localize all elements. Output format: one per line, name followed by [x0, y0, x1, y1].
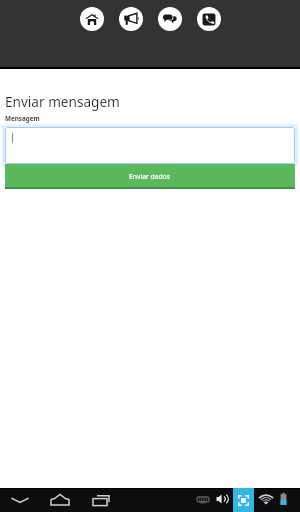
- button[interactable]: Messages: [158, 7, 182, 31]
- staticText: Enviar dados: [129, 172, 171, 181]
- button[interactable]: Announcements: [119, 7, 143, 31]
- button[interactable]: Back: [8, 490, 32, 510]
- button[interactable]: Call: [197, 7, 221, 31]
- button[interactable]: Recent apps: [88, 490, 112, 510]
- button[interactable]: Home: [48, 490, 72, 510]
- staticText: Enviar mensagem: [5, 92, 120, 111]
- button[interactable]: Screenshot: [233, 488, 254, 512]
- button[interactable]: Home: [80, 7, 104, 31]
- button[interactable]: Enviar dados: [5, 164, 295, 189]
- staticText: Mensagem: [5, 114, 40, 123]
